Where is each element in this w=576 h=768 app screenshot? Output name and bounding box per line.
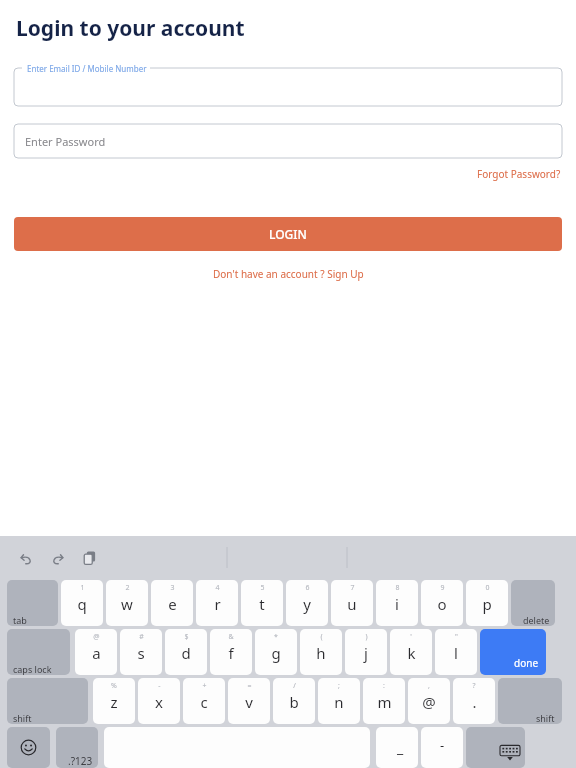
staticText: 7 — [350, 583, 355, 593]
staticText: # — [139, 632, 144, 642]
staticText: 8 — [395, 583, 400, 593]
staticText: Enter Email ID / Mobile Number — [27, 63, 147, 74]
staticText: _ — [397, 738, 404, 757]
button[interactable]: b — [273, 678, 315, 724]
button[interactable]: shift — [498, 678, 562, 724]
button[interactable]: tab — [7, 580, 58, 626]
staticText: . — [472, 692, 477, 712]
staticText: shift — [536, 712, 555, 724]
staticText: Enter Password — [25, 134, 106, 149]
button[interactable]: k — [390, 629, 432, 675]
button[interactable]: i — [376, 580, 418, 626]
staticText: shift — [13, 712, 32, 724]
staticText: y — [303, 594, 311, 614]
staticText: 1 — [80, 583, 85, 593]
button[interactable]: d — [165, 629, 207, 675]
staticText: d — [181, 643, 191, 663]
button[interactable]: w — [106, 580, 148, 626]
staticText: + — [202, 681, 207, 691]
button[interactable]: q — [61, 580, 103, 626]
staticText: : — [383, 681, 385, 691]
staticText: 5 — [260, 583, 265, 593]
button[interactable]: c — [183, 678, 225, 724]
staticText: l — [454, 643, 458, 663]
staticText: 6 — [305, 583, 310, 593]
staticText: Login to your account — [16, 14, 245, 43]
button[interactable]: LOGIN — [14, 217, 562, 251]
staticText: q — [77, 594, 87, 614]
button[interactable]: o — [421, 580, 463, 626]
staticText: u — [347, 594, 357, 614]
staticText: - — [158, 681, 161, 691]
staticText: x — [155, 692, 163, 712]
button[interactable]: h — [300, 629, 342, 675]
button[interactable]: Enter Email ID / Mobile Number — [14, 68, 562, 106]
button[interactable]: Don't have an account ? Sign Up — [213, 267, 364, 281]
staticText: z — [110, 692, 118, 712]
button[interactable]: f — [210, 629, 252, 675]
staticText: / — [293, 681, 296, 691]
button[interactable]: . — [453, 678, 495, 724]
button[interactable]: y — [286, 580, 328, 626]
button[interactable]: e — [151, 580, 193, 626]
button[interactable]: m — [363, 678, 405, 724]
staticText: ; — [338, 681, 340, 691]
button[interactable]: @ — [408, 678, 450, 724]
staticText: t — [259, 594, 265, 614]
button[interactable]: z — [93, 678, 135, 724]
staticText: s — [137, 643, 145, 663]
staticText: c — [200, 692, 208, 712]
button[interactable]: j — [345, 629, 387, 675]
staticText: - — [440, 736, 445, 754]
button[interactable]: Emoji — [7, 727, 50, 768]
button[interactable]: l — [435, 629, 477, 675]
button[interactable]: a — [75, 629, 117, 675]
staticText: LOGIN — [269, 226, 307, 242]
staticText: @ — [93, 632, 100, 642]
staticText: n — [334, 692, 344, 712]
staticText: ? — [472, 681, 476, 691]
button[interactable]: x — [138, 678, 180, 724]
staticText: .?123 — [68, 754, 93, 768]
staticText: o — [437, 594, 447, 614]
staticText: = — [247, 681, 252, 691]
staticText: j — [364, 643, 368, 663]
button[interactable]: Redo — [45, 546, 69, 570]
button[interactable]: r — [196, 580, 238, 626]
button[interactable]: done — [480, 629, 546, 675]
button[interactable]: delete — [511, 580, 555, 626]
staticText: " — [455, 632, 458, 642]
staticText: ' — [410, 632, 412, 642]
staticText: b — [289, 692, 299, 712]
button[interactable]: Forgot Password? — [477, 167, 561, 181]
button[interactable]: g — [255, 629, 297, 675]
button[interactable]: v — [228, 678, 270, 724]
button[interactable]: s — [120, 629, 162, 675]
button[interactable]: _ — [376, 727, 418, 768]
button[interactable]: Enter Password — [14, 124, 562, 158]
staticText: w — [121, 594, 133, 614]
staticText: e — [168, 594, 177, 614]
button[interactable]: n — [318, 678, 360, 724]
staticText: a — [92, 643, 101, 663]
button[interactable]: .?123 — [56, 727, 98, 768]
button[interactable]: shift — [7, 678, 88, 724]
button[interactable]: caps lock — [7, 629, 70, 675]
button[interactable]: Paste — [78, 546, 102, 570]
button[interactable]: u — [331, 580, 373, 626]
button[interactable]: t — [241, 580, 283, 626]
button[interactable]: Hyphen — [421, 727, 463, 768]
staticText: p — [482, 594, 492, 614]
button[interactable]: Undo — [14, 546, 38, 570]
button[interactable]: p — [466, 580, 508, 626]
staticText: Don't have an account ? Sign Up — [213, 267, 364, 281]
staticText: 3 — [170, 583, 175, 593]
staticText: done — [514, 656, 539, 670]
staticText: 2 — [125, 583, 130, 593]
button[interactable]: Hide keyboard — [466, 727, 525, 768]
staticText: ) — [365, 632, 368, 642]
staticText: r — [214, 594, 221, 614]
staticText: i — [395, 594, 399, 614]
staticText: % — [111, 681, 117, 691]
